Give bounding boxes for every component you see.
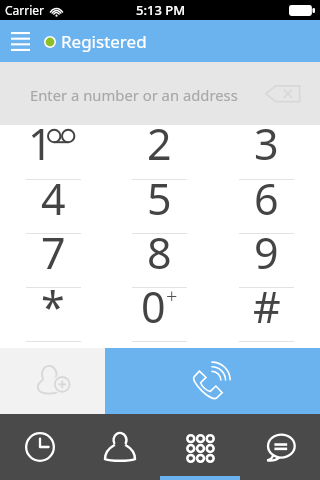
- button[interactable]: Menu: [5, 26, 35, 56]
- staticText: *: [41, 277, 65, 331]
- staticText: 5: [147, 169, 172, 223]
- button[interactable]: 3: [213, 125, 320, 180]
- button[interactable]: Recents: [0, 414, 80, 480]
- staticText: 7: [41, 223, 66, 277]
- button[interactable]: Contacts: [80, 414, 160, 480]
- button[interactable]: Backspace: [265, 81, 305, 107]
- button[interactable]: Call: [105, 348, 320, 414]
- staticText: +: [166, 282, 178, 309]
- button[interactable]: 6: [213, 180, 320, 234]
- button[interactable]: 5: [106, 180, 213, 234]
- button[interactable]: 2: [106, 125, 213, 180]
- staticText: 3: [254, 114, 279, 169]
- button[interactable]: *: [0, 288, 106, 342]
- staticText: 4: [41, 169, 66, 223]
- staticText: 2: [147, 114, 172, 169]
- staticText: 9: [254, 223, 279, 277]
- button[interactable]: Messages: [240, 414, 320, 480]
- button[interactable]: #: [213, 288, 320, 342]
- staticText: 1: [28, 114, 53, 169]
- button[interactable]: 0: [106, 288, 213, 342]
- button[interactable]: 1: [0, 125, 106, 180]
- button[interactable]: 7: [0, 234, 106, 288]
- staticText: Enter a number or an address: [30, 85, 238, 105]
- staticText: #: [253, 277, 281, 331]
- button[interactable]: 8: [106, 234, 213, 288]
- button[interactable]: 4: [0, 180, 106, 234]
- staticText: Registered: [61, 30, 147, 53]
- button[interactable]: Dialpad: [160, 414, 240, 480]
- staticText: 5:13 PM: [136, 1, 186, 19]
- staticText: 6: [254, 169, 279, 223]
- staticText: 0: [141, 277, 166, 331]
- staticText: Carrier: [5, 2, 45, 18]
- staticText: 8: [147, 223, 172, 277]
- button[interactable]: 9: [213, 234, 320, 288]
- button[interactable]: Add contact: [0, 348, 105, 414]
